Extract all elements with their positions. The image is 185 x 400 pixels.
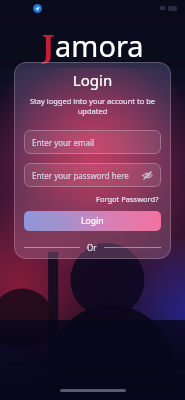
button[interactable]: Login <box>24 211 161 231</box>
staticText: Enter your email <box>32 137 95 148</box>
button[interactable]: Enter your password here <box>24 163 161 187</box>
staticText: J <box>42 24 55 66</box>
button[interactable]: Show password <box>142 170 153 181</box>
button[interactable]: Forgot Password? <box>94 193 161 205</box>
staticText: amora <box>55 26 144 65</box>
button[interactable]: Enter your email <box>24 130 161 154</box>
staticText: Stay logged into your account to be upda… <box>24 96 161 116</box>
staticText: Login <box>81 215 104 227</box>
staticText: Forgot Password? <box>96 194 159 204</box>
staticText: Login <box>24 70 161 90</box>
staticText: Enter your password here <box>32 170 129 181</box>
staticText: Or <box>87 242 97 253</box>
